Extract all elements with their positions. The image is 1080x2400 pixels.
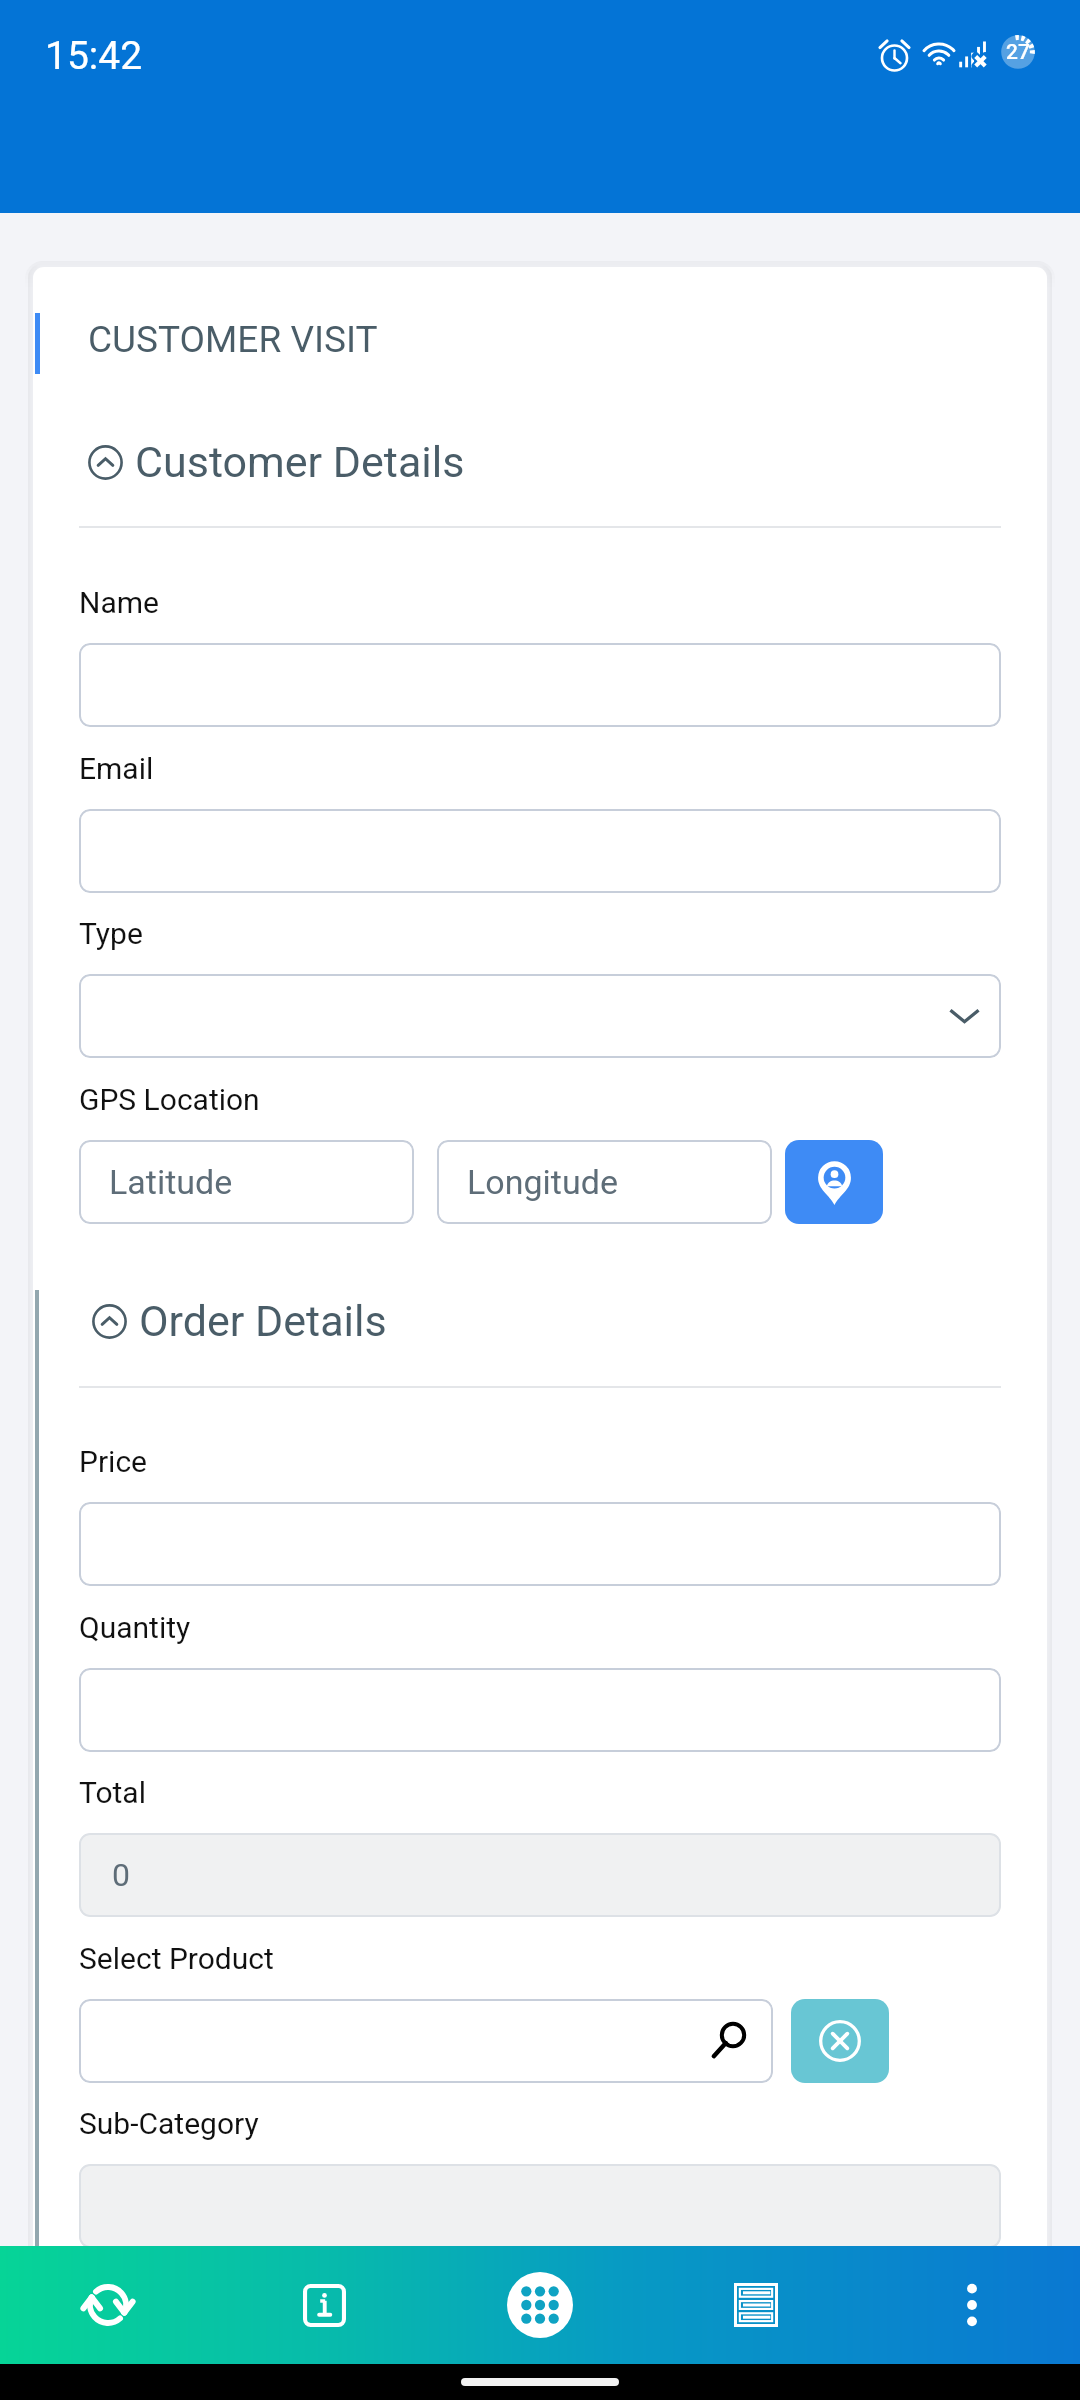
button[interactable]: Apps: [432, 2246, 648, 2364]
staticText: Longitude: [467, 1162, 618, 1202]
button[interactable]: 0: [79, 1833, 1001, 1917]
button[interactable]: [79, 1502, 1001, 1586]
staticText: Latitude: [109, 1162, 233, 1202]
button[interactable]: Clear product: [791, 1999, 889, 2083]
staticText: CUSTOMER VISIT: [88, 318, 378, 361]
staticText: Customer Details: [135, 437, 465, 487]
staticText: Sub-Category: [79, 2106, 259, 2141]
button[interactable]: [79, 2164, 1001, 2246]
button[interactable]: Order Details: [92, 1292, 387, 1350]
button[interactable]: Customer Details: [88, 433, 465, 491]
button[interactable]: Get GPS location: [785, 1140, 883, 1224]
staticText: Email: [79, 751, 154, 786]
button[interactable]: [79, 643, 1001, 727]
staticText: Type: [79, 916, 143, 951]
button[interactable]: Longitude: [437, 1140, 772, 1224]
button[interactable]: Sync: [0, 2246, 216, 2364]
button[interactable]: [79, 809, 1001, 893]
staticText: Name: [79, 585, 159, 620]
button[interactable]: [79, 1999, 773, 2083]
button[interactable]: List: [648, 2246, 864, 2364]
staticText: Price: [79, 1444, 147, 1479]
staticText: 15:42: [45, 33, 143, 79]
staticText: Total: [79, 1775, 146, 1810]
staticText: Order Details: [139, 1296, 387, 1346]
staticText: GPS Location: [79, 1082, 260, 1117]
button[interactable]: [79, 974, 1001, 1058]
staticText: Select Product: [79, 1941, 274, 1976]
button[interactable]: Latitude: [79, 1140, 414, 1224]
button[interactable]: More options: [864, 2246, 1080, 2364]
staticText: 27: [1006, 40, 1030, 65]
staticText: Quantity: [79, 1610, 191, 1645]
staticText: 0: [112, 1856, 130, 1894]
button[interactable]: Info: [216, 2246, 432, 2364]
button[interactable]: [79, 1668, 1001, 1752]
